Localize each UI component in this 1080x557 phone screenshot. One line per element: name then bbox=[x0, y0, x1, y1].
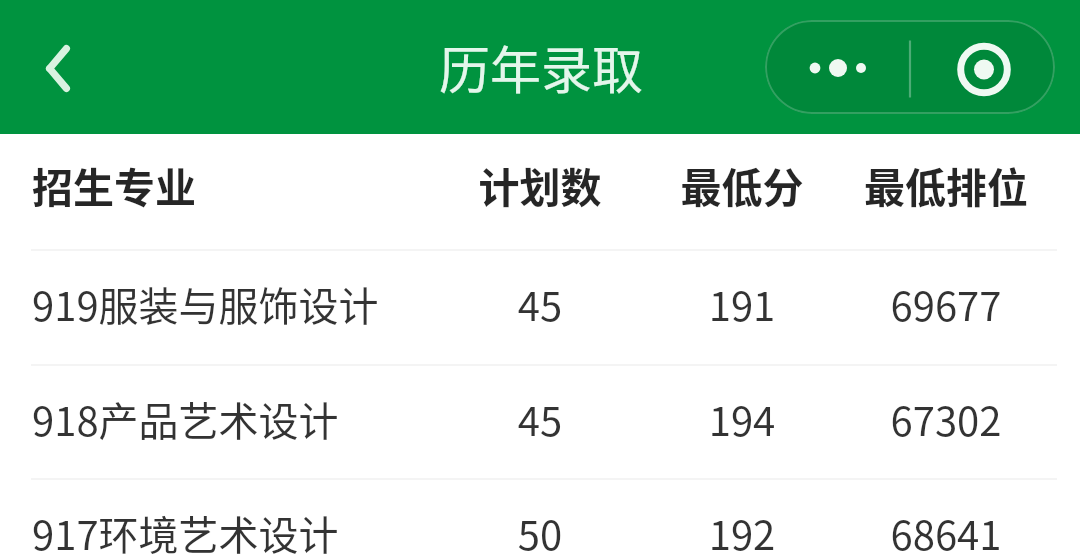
button[interactable]: 918产品艺术设计 bbox=[0, 366, 1080, 478]
staticText: 191 bbox=[612, 275, 872, 333]
staticText: 67302 bbox=[816, 390, 1076, 448]
staticText: 192 bbox=[612, 504, 872, 557]
staticText: 最低排位 bbox=[816, 155, 1076, 214]
button[interactable]: 919服装与服饰设计 bbox=[0, 251, 1080, 364]
button[interactable]: 917环境艺术设计 bbox=[0, 480, 1080, 557]
staticText: 194 bbox=[612, 390, 872, 448]
staticText: 917环境艺术设计 bbox=[32, 504, 339, 557]
button[interactable]: 招生专业 bbox=[0, 134, 1080, 249]
staticText: 历年录取 bbox=[439, 30, 644, 104]
staticText: 招生专业 bbox=[32, 155, 196, 214]
staticText: 45 bbox=[410, 275, 670, 333]
staticText: 919服装与服饰设计 bbox=[32, 275, 379, 333]
button[interactable]: More options and close mini program bbox=[765, 20, 1055, 114]
staticText: 最低分 bbox=[612, 155, 872, 214]
button[interactable]: Back bbox=[14, 20, 110, 116]
staticText: 918产品艺术设计 bbox=[32, 390, 339, 448]
staticText: 45 bbox=[410, 390, 670, 448]
staticText: 68641 bbox=[816, 504, 1076, 557]
staticText: 50 bbox=[410, 504, 670, 557]
staticText: 69677 bbox=[816, 275, 1076, 333]
staticText: 计划数 bbox=[410, 155, 670, 214]
